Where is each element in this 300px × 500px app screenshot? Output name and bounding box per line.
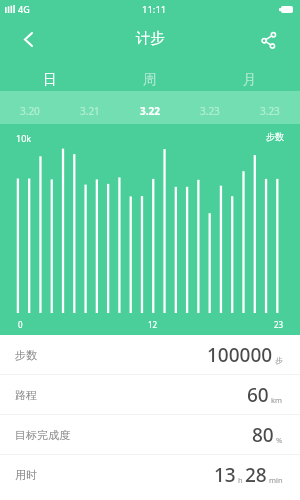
staticText: 3.23 — [200, 104, 220, 118]
staticText: 用时 — [15, 468, 37, 482]
button[interactable]: 3.23 — [240, 91, 300, 124]
button[interactable]: 周 — [100, 0, 200, 91]
button[interactable]: Back — [6, 17, 51, 62]
button[interactable]: 月 — [200, 0, 300, 91]
button[interactable]: 步数 — [0, 335, 300, 374]
staticText: 步数 — [15, 348, 37, 362]
staticText: 12 — [148, 319, 158, 330]
button[interactable]: 目标完成度 — [0, 415, 300, 454]
staticText: 0 — [18, 319, 23, 330]
staticText: 60 — [247, 382, 269, 408]
button[interactable]: 用时 — [0, 455, 300, 494]
staticText: 13 — [214, 462, 236, 488]
staticText: 3.23 — [260, 104, 280, 118]
button[interactable]: 3.22 — [120, 91, 180, 124]
staticText: 日 — [43, 71, 57, 88]
staticText: 周 — [143, 71, 157, 88]
staticText: 80 — [252, 422, 274, 448]
staticText: 11:11 — [142, 3, 167, 16]
staticText: km — [271, 395, 283, 405]
staticText: 4G — [18, 3, 30, 15]
staticText: 目标完成度 — [15, 428, 70, 442]
staticText: min — [269, 475, 283, 485]
button[interactable]: 3.21 — [60, 91, 120, 124]
staticText: 月 — [243, 71, 257, 88]
button[interactable]: 3.23 — [180, 91, 240, 124]
staticText: 23 — [274, 319, 284, 330]
button[interactable]: 3.20 — [0, 91, 60, 124]
staticText: 3.20 — [20, 104, 40, 118]
staticText: 路程 — [15, 388, 37, 402]
staticText: 10k — [16, 132, 32, 144]
staticText: 100000 — [207, 342, 273, 368]
staticText: 3.21 — [80, 104, 100, 118]
staticText: 计步 — [136, 29, 165, 47]
staticText: 步 — [275, 356, 283, 365]
button[interactable]: Share — [246, 17, 291, 62]
staticText: % — [276, 435, 283, 445]
button[interactable]: 日 — [0, 0, 100, 91]
button[interactable]: 路程 — [0, 375, 300, 414]
staticText: 步数 — [266, 131, 284, 142]
staticText: 3.22 — [140, 104, 160, 118]
staticText: 28 — [245, 462, 267, 488]
staticText: h — [238, 475, 243, 485]
